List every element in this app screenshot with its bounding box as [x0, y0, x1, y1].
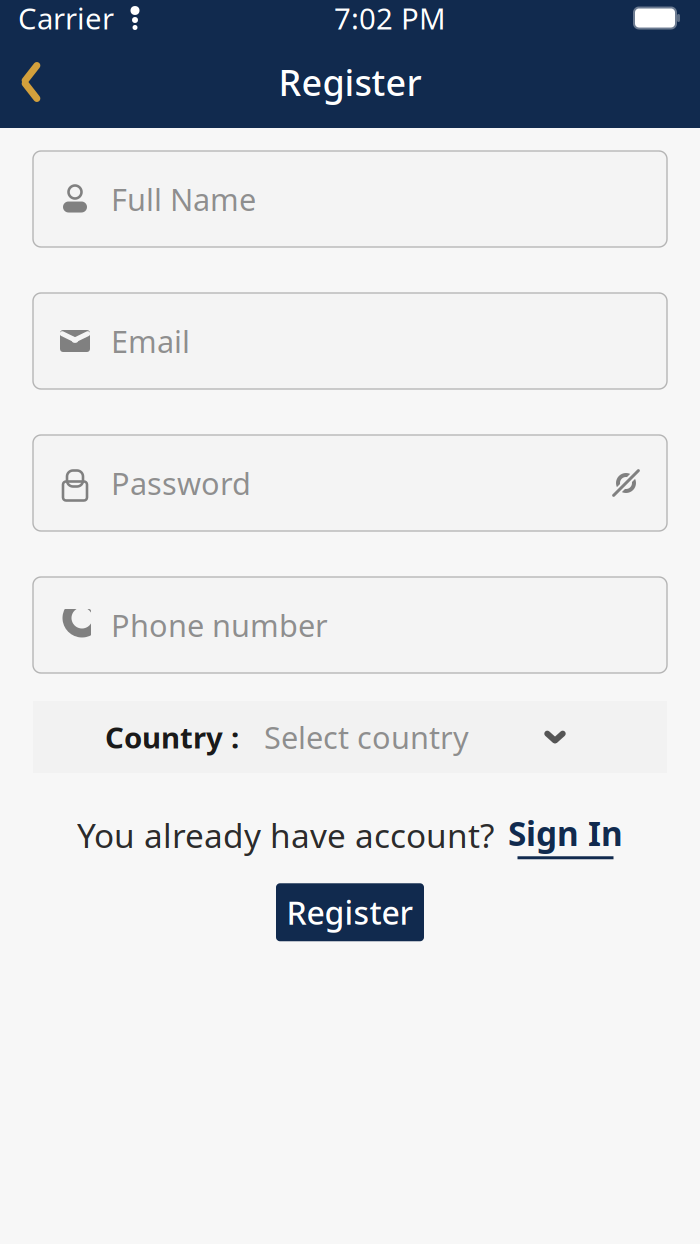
staticText: You already have account?: [77, 813, 494, 857]
button[interactable]: Email: [33, 293, 667, 389]
staticText: Country :: [105, 717, 239, 756]
staticText: Select country: [264, 717, 469, 757]
staticText: Phone number: [111, 605, 328, 645]
staticText: 7:02 PM: [334, 0, 446, 37]
staticText: Sign In: [508, 811, 623, 855]
button[interactable]: Full Name: [33, 151, 667, 247]
staticText: Register: [278, 58, 421, 106]
staticText: Full Name: [111, 179, 256, 219]
button[interactable]: Register: [276, 883, 424, 941]
button[interactable]: Sign In: [494, 811, 623, 859]
button[interactable]: Back: [0, 50, 62, 114]
staticText: Carrier: [18, 0, 114, 37]
staticText: Email: [111, 321, 190, 361]
staticText: Register: [286, 891, 413, 933]
button[interactable]: Password: [33, 435, 667, 531]
button[interactable]: Phone number: [33, 577, 667, 673]
button[interactable]: Country :: [33, 701, 667, 773]
staticText: Password: [111, 463, 251, 503]
